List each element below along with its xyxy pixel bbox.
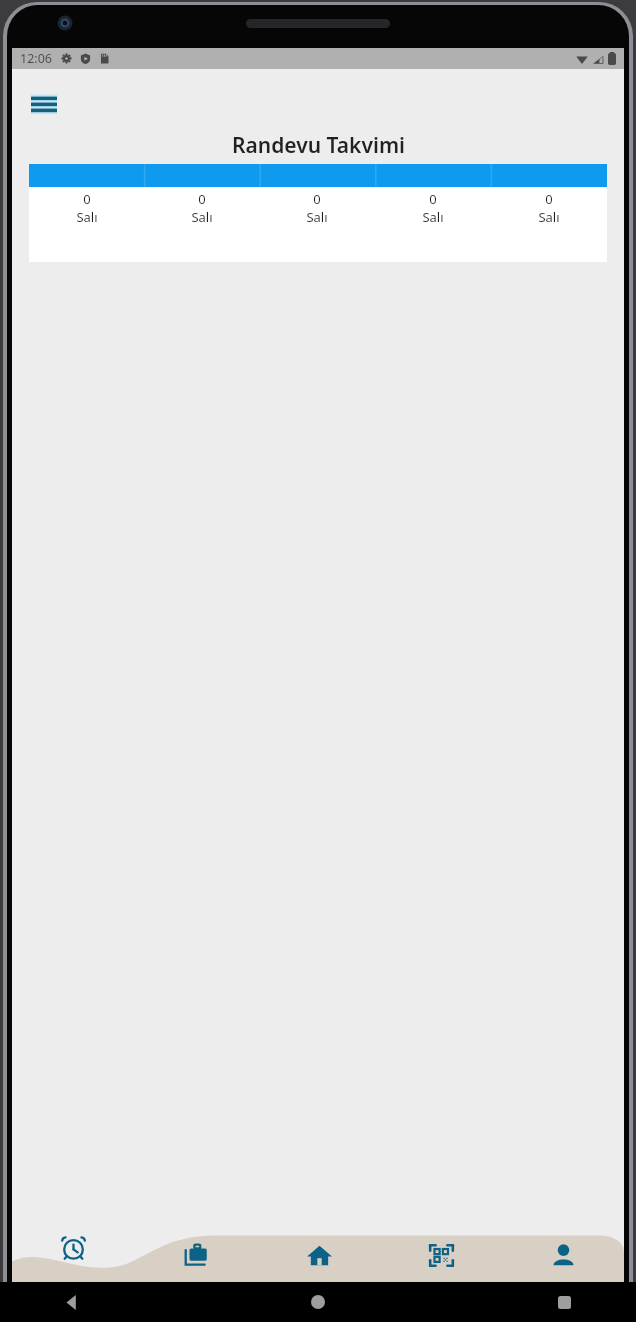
staticText: Salı — [76, 208, 98, 226]
button[interactable]: Menu — [24, 83, 64, 123]
staticText: Salı — [422, 208, 444, 226]
button[interactable]: 0 — [491, 187, 607, 232]
button[interactable]: Alarm — [12, 1228, 135, 1282]
button[interactable]: 0 — [144, 187, 259, 232]
button[interactable]: 0 — [259, 187, 375, 232]
staticText: Salı — [538, 208, 560, 226]
button[interactable]: Home — [258, 1228, 380, 1282]
staticText: 12:06 — [20, 50, 52, 67]
button[interactable]: Back — [52, 1282, 92, 1322]
staticText: 0 — [198, 190, 206, 208]
staticText: 0 — [545, 190, 553, 208]
staticText: Salı — [191, 208, 213, 226]
staticText: 0 — [429, 190, 437, 208]
staticText: Randevu Takvimi — [232, 131, 405, 160]
button[interactable]: Home — [298, 1282, 338, 1322]
button[interactable]: Scan QR — [380, 1228, 502, 1282]
button[interactable]: Profile — [502, 1228, 624, 1282]
button[interactable]: Recents — [544, 1282, 584, 1322]
button[interactable]: 0 — [29, 187, 144, 232]
button[interactable]: 0 — [375, 187, 491, 232]
button[interactable]: Work — [135, 1228, 258, 1282]
staticText: 0 — [313, 190, 321, 208]
staticText: 0 — [83, 190, 91, 208]
staticText: Salı — [306, 208, 328, 226]
